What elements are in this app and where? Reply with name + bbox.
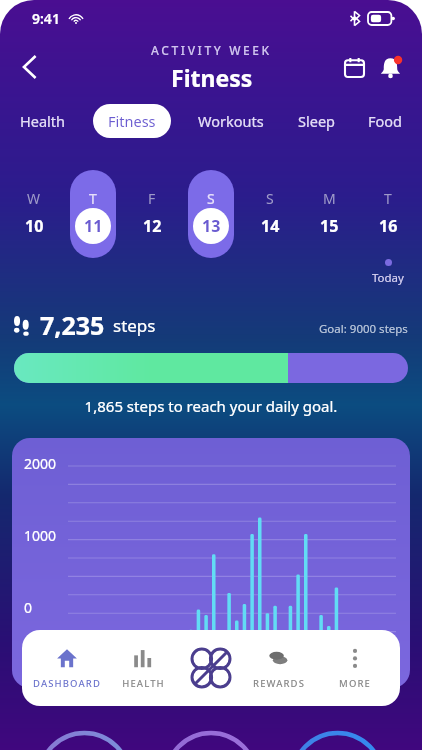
staticText: T [384, 189, 392, 208]
button[interactable]: Sleep [292, 104, 341, 138]
staticText: T [89, 189, 97, 208]
staticText: Food [368, 111, 402, 131]
staticText: 1,865 steps to reach your daily goal. [14, 396, 408, 416]
button[interactable]: F [126, 170, 178, 258]
staticText: DASHBOARD [33, 677, 101, 690]
staticText: 12 [143, 215, 162, 237]
staticText: 10 [25, 215, 44, 237]
staticText: W [27, 189, 41, 208]
button[interactable]: M [303, 170, 355, 258]
staticText: S [207, 189, 215, 208]
button[interactable]: Food [362, 104, 408, 138]
staticText: S [266, 189, 274, 208]
staticText: 16 [379, 215, 398, 237]
button[interactable]: Fitness [93, 104, 171, 138]
staticText: 15 [320, 215, 339, 237]
staticText: Fitness [108, 111, 156, 131]
button[interactable]: T [67, 170, 119, 258]
staticText: Today [372, 270, 404, 286]
staticText: Sleep [298, 111, 335, 131]
button[interactable]: 2000 [12, 438, 410, 688]
staticText: Workouts [198, 111, 264, 131]
button[interactable]: T [362, 170, 414, 286]
staticText: 9:41 [32, 9, 60, 28]
button[interactable]: Health [14, 104, 71, 138]
staticText: MORE [339, 677, 371, 690]
staticText: 0 [24, 598, 33, 617]
button[interactable]: S [244, 170, 296, 258]
button[interactable]: Calendar [336, 49, 372, 85]
button[interactable]: HEALTH [106, 641, 180, 696]
button[interactable]: REWARDS [242, 641, 316, 696]
staticText: 2000 [24, 454, 57, 473]
staticText: M [323, 189, 336, 208]
staticText: Health [20, 111, 65, 131]
button[interactable]: S [185, 170, 237, 258]
staticText: Goal: 9000 steps [319, 321, 408, 337]
staticText: 13 [202, 215, 221, 237]
staticText: 7,235 [40, 308, 105, 342]
button[interactable]: Notifications [372, 49, 408, 85]
staticText: 1000 [24, 526, 57, 545]
staticText: 11 [84, 215, 103, 237]
staticText: 14 [261, 215, 280, 237]
button[interactable]: DASHBOARD [30, 641, 104, 696]
button[interactable]: Home logo [182, 639, 240, 697]
staticText: ACTIVITY WEEK [151, 42, 272, 58]
staticText: Fitness [171, 62, 253, 93]
staticText: REWARDS [253, 677, 305, 690]
staticText: HEALTH [122, 677, 165, 690]
button[interactable]: W [8, 170, 60, 258]
button[interactable]: MORE [318, 641, 392, 696]
button[interactable]: Back [8, 45, 52, 89]
staticText: steps [113, 314, 156, 337]
button[interactable]: Workouts [192, 104, 270, 138]
staticText: F [148, 189, 156, 208]
